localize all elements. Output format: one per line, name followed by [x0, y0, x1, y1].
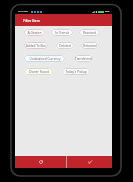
staticText: Owner Found — [29, 70, 49, 74]
staticText: Deleted — [59, 44, 71, 48]
staticText: Transferred — [75, 57, 92, 61]
staticText: Today's Pickup — [65, 70, 87, 74]
button[interactable]: Transferred — [74, 55, 93, 62]
staticText: Received — [83, 31, 96, 35]
button[interactable]: Today's Pickup — [62, 68, 90, 75]
button[interactable]: In Transit — [51, 29, 73, 36]
button[interactable]: Owner Found — [24, 68, 53, 75]
button[interactable]: Returned — [81, 42, 99, 49]
staticText: Unobtained Currency — [29, 57, 61, 61]
staticText: Filter Item — [23, 18, 40, 23]
button[interactable]: Unobtained Currency — [24, 55, 65, 62]
staticText: Returned — [83, 44, 97, 48]
button[interactable]: At Station — [24, 29, 45, 36]
staticText: In Transit — [55, 31, 69, 35]
button[interactable]: Reset filters — [15, 156, 66, 168]
button[interactable]: Added To Box — [24, 42, 48, 49]
button[interactable]: Apply filters — [67, 156, 112, 168]
button[interactable]: Deleted — [56, 42, 74, 49]
staticText: 11:15 PM — [18, 10, 28, 13]
button[interactable]: Received — [79, 29, 100, 36]
staticText: Added To Box — [26, 44, 46, 48]
staticText: 92% — [105, 10, 110, 13]
staticText: At Station — [27, 31, 42, 35]
